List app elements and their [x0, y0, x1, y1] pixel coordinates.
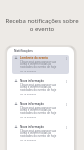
- button[interactable]: Mais opções: [64, 102, 68, 106]
- button[interactable]: Lembrete do evento: [12, 55, 69, 74]
- staticText: Notificações: [14, 49, 33, 53]
- staticText: Clique aqui para acessar sua conta e con…: [20, 83, 58, 92]
- button[interactable]: Mais opções: [64, 79, 68, 83]
- staticText: Nova informação: [20, 102, 44, 106]
- staticText: Clique aqui para acessar sua conta e con…: [20, 106, 58, 115]
- staticText: há 15 minutos: [20, 92, 37, 95]
- staticText: Lembrete do evento: [20, 56, 49, 60]
- button[interactable]: Mais opções: [64, 125, 68, 129]
- staticText: há 15 minutos: [20, 69, 37, 72]
- staticText: há 15 minutos: [20, 138, 37, 141]
- staticText: Nova informação: [20, 125, 44, 129]
- button[interactable]: Nova informação: [12, 78, 69, 97]
- button[interactable]: Nova informação: [12, 124, 69, 143]
- staticText: Nova informação: [20, 79, 44, 83]
- staticText: Receba notificações sobre o evento: [3, 17, 81, 33]
- staticText: Clique aqui para acessar sua conta e con…: [20, 129, 58, 138]
- button[interactable]: Mais opções: [64, 56, 68, 60]
- staticText: há 15 minutos: [20, 115, 37, 118]
- staticText: Clique aqui para acessar sua conta e con…: [20, 60, 58, 69]
- button[interactable]: Nova informação: [12, 101, 69, 120]
